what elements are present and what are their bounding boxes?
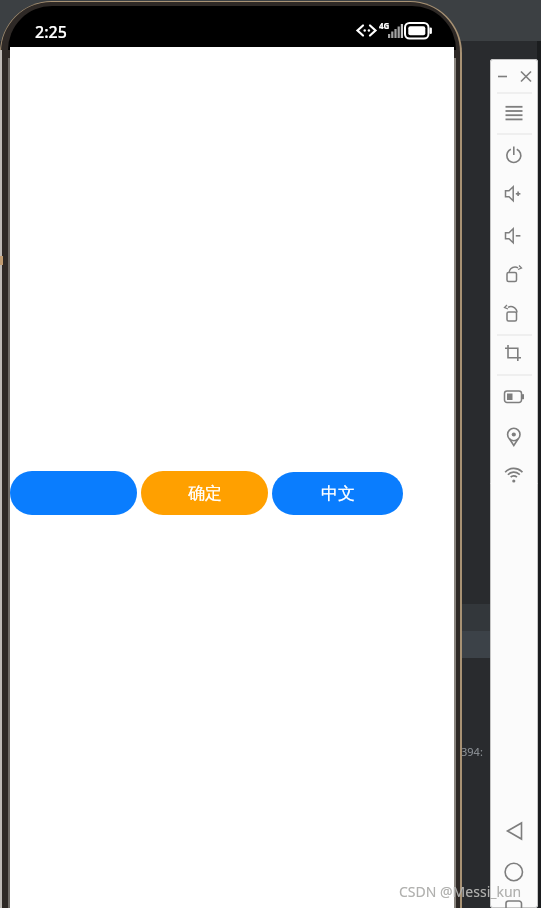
button[interactable] bbox=[502, 860, 526, 884]
button[interactable] bbox=[502, 225, 526, 249]
staticText: 确定 bbox=[188, 483, 222, 504]
button[interactable] bbox=[502, 264, 526, 288]
button[interactable] bbox=[502, 425, 526, 449]
button[interactable] bbox=[502, 143, 526, 167]
button[interactable] bbox=[518, 68, 541, 92]
staticText: 中文 bbox=[321, 483, 355, 504]
staticText: 394: bbox=[461, 744, 483, 759]
button[interactable] bbox=[502, 101, 526, 125]
button[interactable] bbox=[502, 463, 526, 487]
button[interactable] bbox=[502, 819, 526, 843]
button[interactable]: 确定 bbox=[141, 471, 268, 515]
button[interactable] bbox=[502, 341, 526, 365]
button[interactable] bbox=[502, 896, 526, 908]
staticText: CSDN @Messi_kun bbox=[399, 882, 522, 901]
staticText: 4G bbox=[379, 20, 390, 31]
staticText: 2:25 bbox=[35, 21, 67, 43]
button[interactable] bbox=[502, 385, 526, 409]
button[interactable] bbox=[10, 471, 137, 515]
button[interactable] bbox=[502, 303, 526, 327]
button[interactable] bbox=[502, 183, 526, 207]
button[interactable]: 中文 bbox=[272, 472, 403, 515]
button[interactable] bbox=[496, 70, 520, 94]
